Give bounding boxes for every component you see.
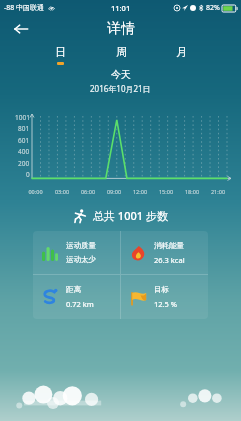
staticText: 日 (55, 45, 66, 59)
staticText: 0.72 km (66, 299, 94, 309)
staticText: 21:00 (205, 188, 231, 195)
staticText: 26.3 kcal (154, 255, 185, 265)
button[interactable]: 目标 (121, 275, 208, 319)
button[interactable]: 月 (151, 42, 211, 68)
button[interactable]: 日 (30, 42, 91, 68)
staticText: 今天 (111, 68, 131, 81)
button[interactable]: 周 (91, 42, 151, 68)
staticText: 400 (18, 147, 30, 156)
staticText: 详情 (107, 20, 135, 38)
staticText: 距离 (66, 285, 81, 294)
button[interactable]: 距离 (33, 275, 120, 319)
staticText: 00:00 (22, 188, 49, 195)
staticText: 18:00 (179, 188, 205, 195)
staticText: 1001 (15, 113, 30, 122)
staticText: 消耗能量 (154, 241, 184, 250)
staticText: 运动质量 (66, 241, 96, 250)
staticText: 82% (206, 3, 220, 13)
staticText: 11:01 (111, 3, 131, 13)
button[interactable]: 消耗能量 (121, 231, 208, 274)
staticText: 15:00 (153, 188, 179, 195)
staticText: 03:00 (49, 188, 75, 195)
staticText: 12.5 % (154, 299, 178, 309)
button[interactable]: 运动质量 (33, 231, 120, 274)
staticText: 2016年10月21日 (90, 83, 151, 94)
staticText: 目标 (154, 285, 169, 294)
staticText: 周 (116, 45, 127, 59)
staticText: 总共 1001 步数 (93, 208, 168, 223)
staticText: 06:00 (75, 188, 101, 195)
staticText: 801 (18, 124, 30, 133)
staticText: 601 (18, 136, 30, 145)
staticText: 09:00 (101, 188, 127, 195)
staticText: 月 (176, 45, 187, 59)
staticText: 0 (26, 170, 30, 179)
button[interactable]: Back (8, 16, 34, 42)
staticText: 12:00 (127, 188, 153, 195)
staticText: -88 中国联通 (4, 3, 45, 13)
staticText: 运动太少 (66, 255, 96, 264)
staticText: 200 (18, 159, 30, 168)
